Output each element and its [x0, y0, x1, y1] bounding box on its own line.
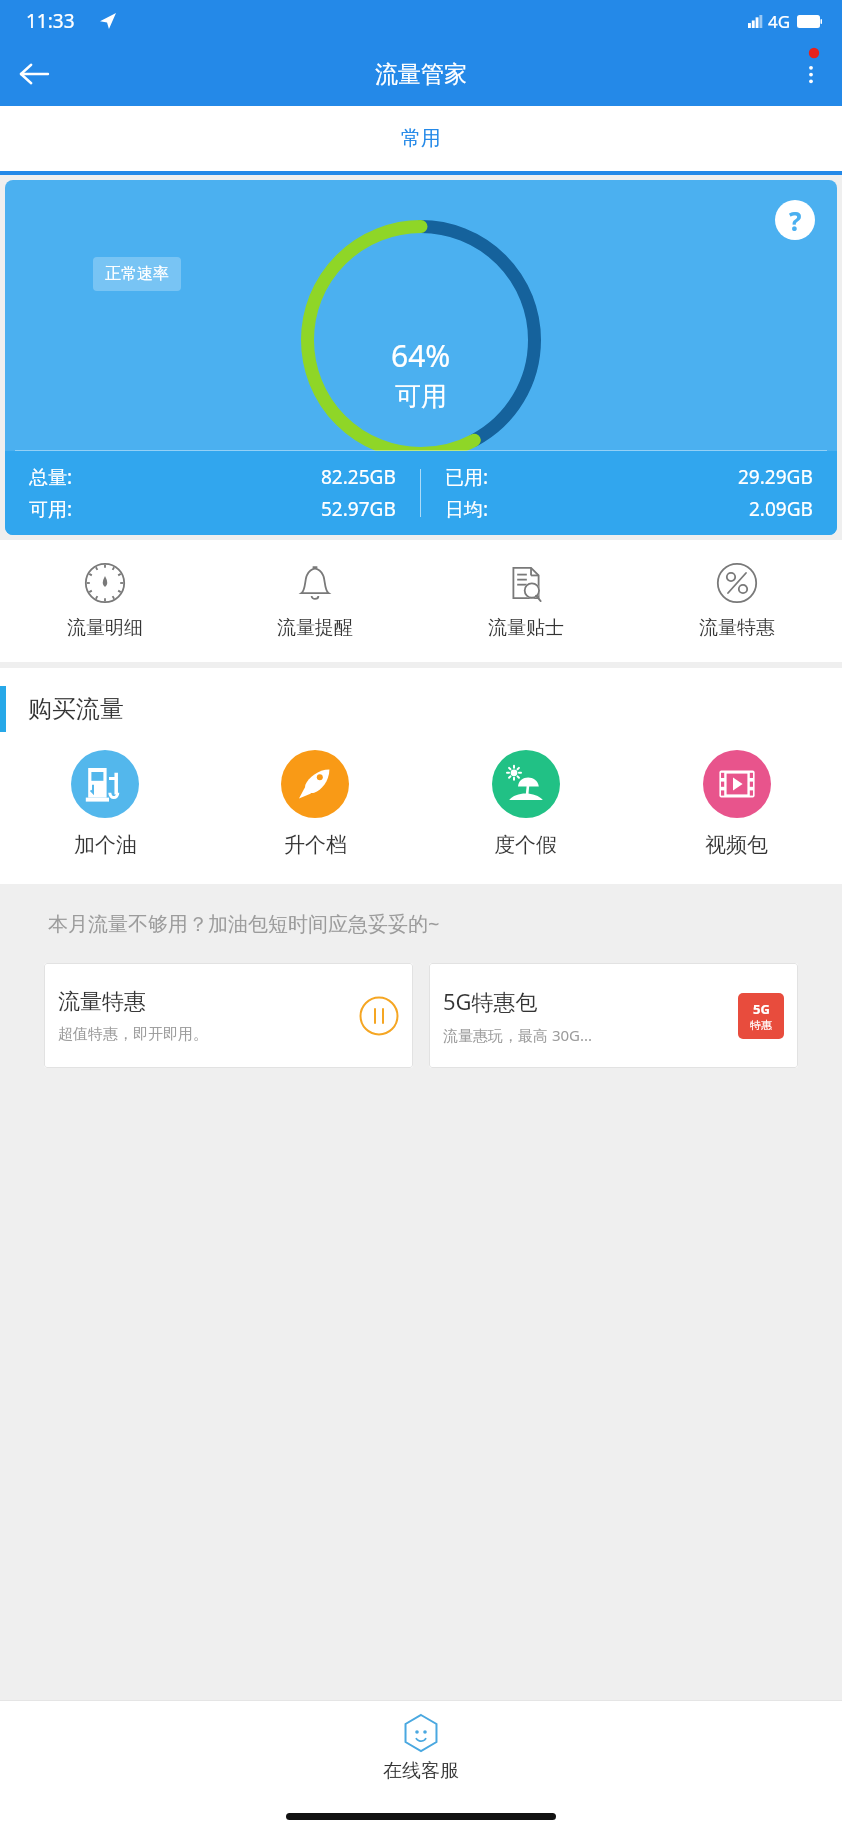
staticText: 52.97GB: [321, 496, 396, 522]
button[interactable]: 常用: [0, 106, 842, 171]
button[interactable]: 加个油: [0, 750, 210, 858]
staticText: 5G: [753, 1000, 770, 1018]
staticText: 4G: [768, 10, 791, 33]
staticText: 可用: [395, 380, 447, 413]
staticText: 64%: [391, 335, 451, 376]
staticText: 已用:: [445, 464, 489, 490]
button[interactable]: 流量贴士: [420, 558, 631, 644]
staticText: 加个油: [74, 832, 137, 858]
staticText: 可用:: [29, 496, 73, 522]
button[interactable]: Back: [0, 42, 68, 106]
staticText: 视频包: [705, 832, 768, 858]
staticText: 流量明细: [67, 616, 143, 640]
button[interactable]: 5G特惠包: [429, 963, 798, 1068]
staticText: 超值特惠，即开即用。: [58, 1025, 208, 1044]
staticText: 流量特惠: [58, 988, 146, 1016]
staticText: 2.09GB: [749, 496, 813, 522]
staticText: 正常速率: [105, 264, 169, 284]
button[interactable]: 流量提醒: [210, 558, 420, 644]
staticText: 流量管家: [375, 60, 467, 89]
button[interactable]: Help: [775, 200, 815, 240]
staticText: 特惠: [750, 1018, 772, 1032]
staticText: 度个假: [494, 832, 557, 858]
staticText: 11:33: [26, 8, 75, 34]
staticText: 在线客服: [383, 1759, 459, 1783]
staticText: 流量贴士: [488, 616, 564, 640]
staticText: 流量惠玩，最高 30G...: [443, 1025, 593, 1045]
staticText: 常用: [401, 126, 441, 151]
staticText: 82.25GB: [321, 464, 396, 490]
staticText: 流量特惠: [699, 616, 775, 640]
staticText: 购买流量: [28, 694, 124, 724]
staticText: 总量:: [29, 464, 73, 490]
staticText: 本月流量不够用？加油包短时间应急妥妥的~: [48, 910, 440, 937]
staticText: 5G特惠包: [443, 986, 538, 1016]
staticText: 流量提醒: [277, 616, 353, 640]
button[interactable]: 度个假: [420, 750, 631, 858]
staticText: 升个档: [284, 832, 347, 858]
button[interactable]: 流量特惠: [44, 963, 413, 1068]
button[interactable]: 流量明细: [0, 558, 210, 644]
button[interactable]: 升个档: [210, 750, 420, 858]
staticText: 日均:: [445, 496, 489, 522]
staticText: ?: [789, 203, 802, 238]
button[interactable]: More options: [780, 42, 842, 106]
button[interactable]: 流量特惠: [631, 558, 842, 644]
staticText: 29.29GB: [738, 464, 813, 490]
button[interactable]: 视频包: [631, 750, 842, 858]
button[interactable]: 在线客服: [0, 1701, 842, 1793]
